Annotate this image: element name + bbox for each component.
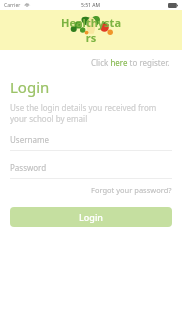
staticText: Healthystars [59, 15, 123, 45]
button[interactable]: Forgot your password? [91, 183, 172, 197]
staticText: Login [10, 77, 50, 97]
staticText: Use the login details you received from … [10, 102, 172, 124]
staticText: Forgot your password? [91, 185, 172, 195]
button[interactable]: Password [10, 162, 172, 179]
staticText: 5:51 AM [81, 2, 101, 9]
staticText: Click here to register. [91, 57, 170, 68]
button[interactable]: Login [10, 207, 172, 227]
staticText: Carrier [4, 2, 21, 9]
staticText: Username [10, 134, 49, 145]
button[interactable]: Username [10, 134, 172, 151]
button[interactable]: Click here to register. [89, 55, 172, 70]
staticText: Password [10, 162, 47, 173]
other: Healthystars logo [59, 14, 123, 46]
staticText: Login [79, 211, 103, 223]
